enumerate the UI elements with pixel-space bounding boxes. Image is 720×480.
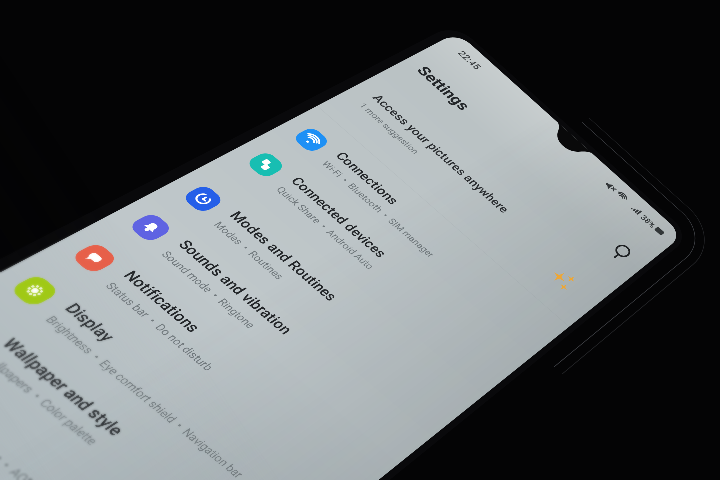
other: Phone showing the Settings screen [0, 0, 720, 480]
button[interactable] [0, 0, 720, 480]
